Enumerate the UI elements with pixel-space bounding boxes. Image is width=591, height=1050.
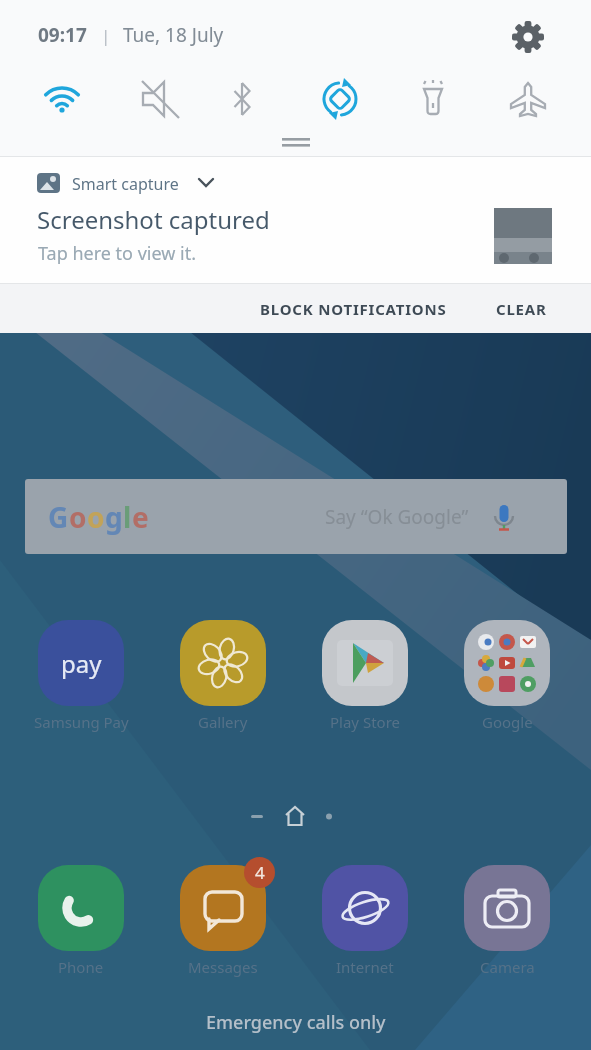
staticText: o [69, 498, 87, 536]
staticText: 4 [255, 861, 265, 884]
button[interactable] [508, 17, 548, 57]
button[interactable] [464, 865, 550, 951]
staticText: Emergency calls only [206, 1010, 386, 1035]
staticText: o [87, 498, 105, 536]
button[interactable] [38, 865, 124, 951]
button[interactable] [322, 865, 408, 951]
button[interactable]: Smart capture [0, 157, 591, 283]
button[interactable]: BLOCK NOTIFICATIONS [256, 295, 451, 323]
button[interactable] [218, 75, 266, 123]
staticText: 09:17 [38, 22, 87, 48]
button[interactable]: CLEAR [492, 295, 551, 323]
button[interactable] [180, 620, 266, 706]
staticText: BLOCK NOTIFICATIONS [260, 299, 447, 319]
staticText: CLEAR [496, 299, 547, 319]
button[interactable] [409, 75, 457, 123]
button[interactable] [316, 75, 364, 123]
staticText: Tue, 18 July [123, 22, 224, 48]
button[interactable] [322, 620, 408, 706]
staticText: Gallery [198, 712, 248, 732]
staticText: Screenshot captured [37, 203, 270, 236]
button[interactable] [464, 620, 550, 706]
staticText: Google [482, 712, 533, 732]
staticText: Smart capture [72, 173, 179, 195]
staticText: pay [61, 647, 102, 680]
staticText: G [48, 498, 69, 536]
staticText: l [123, 498, 132, 536]
button[interactable] [38, 620, 124, 706]
staticText: Samsung Pay [34, 712, 129, 732]
button[interactable] [504, 75, 552, 123]
staticText: Camera [480, 957, 535, 977]
staticText: Internet [336, 957, 394, 977]
staticText: Phone [58, 957, 104, 977]
staticText: Play Store [330, 712, 400, 732]
staticText: g [105, 498, 123, 536]
staticText: Tap here to view it. [38, 241, 197, 266]
staticText: Say “Ok Google” [325, 504, 469, 530]
button[interactable] [38, 75, 86, 123]
staticText: Messages [188, 957, 258, 977]
staticText: | [101, 24, 111, 47]
staticText: e [132, 498, 149, 536]
button[interactable] [180, 865, 266, 951]
button[interactable]: G [25, 479, 567, 554]
button[interactable] [133, 75, 181, 123]
